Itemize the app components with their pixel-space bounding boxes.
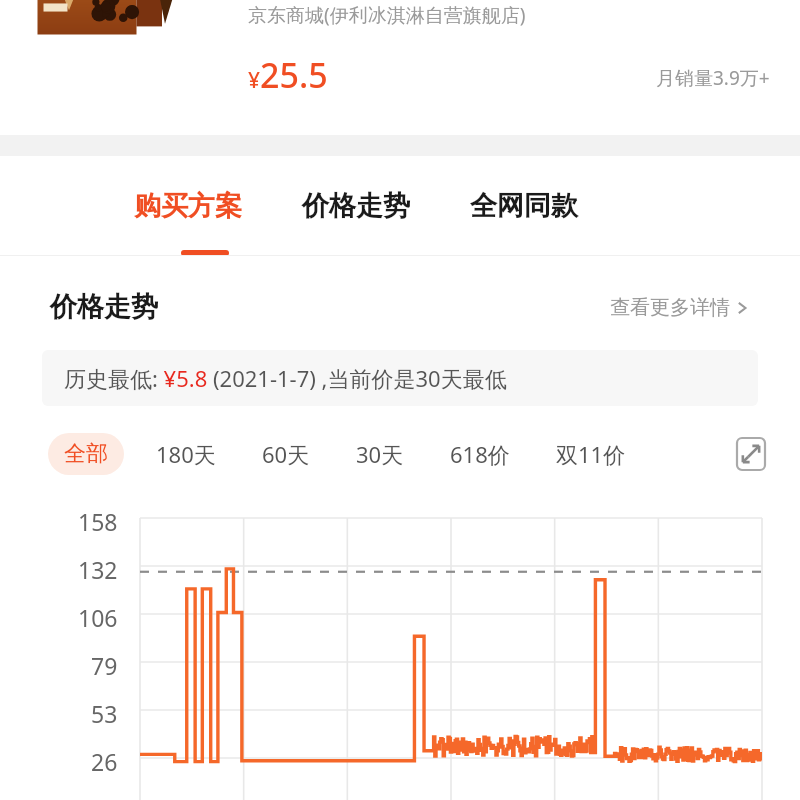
button[interactable]: 30天 [340, 432, 420, 476]
staticText: 53 [91, 698, 118, 729]
staticText: 历史最低: ¥5.8 (2021-1-7) ,当前价是30天最低 [64, 363, 507, 393]
button[interactable]: 购买方案 [130, 181, 246, 231]
staticText: 30天 [356, 439, 404, 469]
staticText: 26 [91, 746, 118, 777]
staticText: 158 [78, 506, 118, 537]
button[interactable]: 618价 [434, 432, 526, 476]
staticText: 180天 [156, 439, 216, 469]
staticText: ¥25.5 [248, 52, 328, 98]
staticText: 79 [91, 650, 118, 681]
staticText: 60天 [262, 439, 310, 469]
staticText: 106 [78, 602, 118, 633]
button[interactable]: 价格走势 [298, 181, 414, 231]
staticText: 132 [78, 554, 118, 585]
button[interactable]: 全网同款 [466, 181, 582, 231]
staticText: 618价 [450, 439, 510, 469]
staticText: 京东商城(伊利冰淇淋自营旗舰店) [248, 2, 526, 28]
button[interactable]: 全部 [48, 433, 124, 475]
staticText: 购买方案 [134, 189, 242, 223]
button[interactable]: 60天 [246, 432, 326, 476]
button[interactable]: Expand chart [732, 435, 770, 473]
staticText: 双11价 [556, 439, 626, 469]
staticText: 价格走势 [302, 189, 410, 223]
staticText: 月销量3.9万+ [656, 65, 770, 91]
button[interactable]: 双11价 [540, 432, 642, 476]
staticText: 全部 [64, 440, 108, 468]
button[interactable]: 查看更多详情 [610, 295, 750, 320]
staticText: 价格走势 [50, 290, 158, 324]
button[interactable]: 180天 [140, 432, 232, 476]
staticText: 全网同款 [470, 189, 578, 223]
staticText: 查看更多详情 [610, 295, 730, 320]
